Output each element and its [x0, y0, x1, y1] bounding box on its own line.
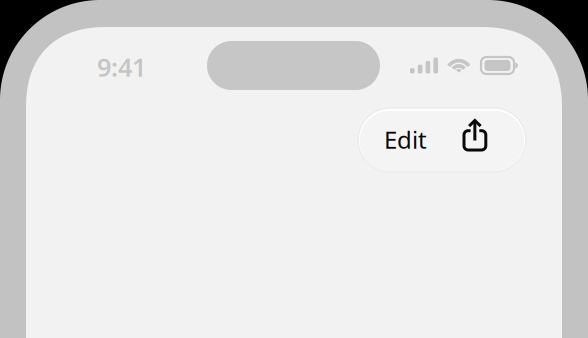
staticText: Edit — [384, 123, 427, 155]
button[interactable]: Edit — [357, 107, 526, 172]
staticText: 9:41 — [97, 50, 146, 84]
